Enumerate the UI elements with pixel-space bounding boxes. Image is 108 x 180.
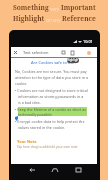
staticText: Tap here drag to add/edit your own note bbox=[17, 145, 78, 149]
staticText: Are Cookies safe to use? bbox=[31, 60, 77, 65]
button[interactable]: Highlight colour bbox=[85, 49, 92, 56]
button[interactable]: Back bbox=[25, 165, 39, 175]
button[interactable]: Close bbox=[12, 49, 19, 56]
staticText: values stored in the cookie. bbox=[18, 125, 66, 130]
staticText: very bbox=[49, 6, 61, 12]
button[interactable]: Recents bbox=[71, 165, 85, 175]
staticText: Your Note bbox=[17, 139, 37, 144]
button[interactable]: Select all bbox=[60, 49, 67, 56]
staticText: technically possible. bbox=[18, 112, 53, 117]
staticText: Highlight bbox=[67, 58, 79, 63]
staticText: information as storing passwords in a bbox=[18, 94, 84, 99]
staticText: cookie. bbox=[15, 81, 28, 86]
staticText: • Keep the lifetime of a cookie as short… bbox=[15, 107, 87, 112]
staticText: Text selection bbox=[23, 50, 49, 55]
staticText: Important bbox=[61, 3, 96, 12]
staticText: • Cookies are not designed to store crit… bbox=[15, 88, 88, 93]
button[interactable]: Copy bbox=[69, 49, 76, 56]
staticText: on any bbox=[45, 17, 62, 23]
staticText: Something bbox=[13, 3, 49, 12]
button[interactable]: Home bbox=[48, 165, 62, 175]
staticText: attention to the type of data you store … bbox=[15, 75, 89, 80]
staticText: is a bad idea. bbox=[18, 100, 41, 105]
staticText: Reference bbox=[62, 14, 96, 23]
staticText: • Encrypt cookie data to help protect th… bbox=[15, 119, 85, 124]
staticText: Highlight bbox=[13, 14, 45, 23]
staticText: 10:01 bbox=[83, 39, 93, 43]
staticText: No, Cookies are not secure. You must pay bbox=[15, 69, 87, 74]
